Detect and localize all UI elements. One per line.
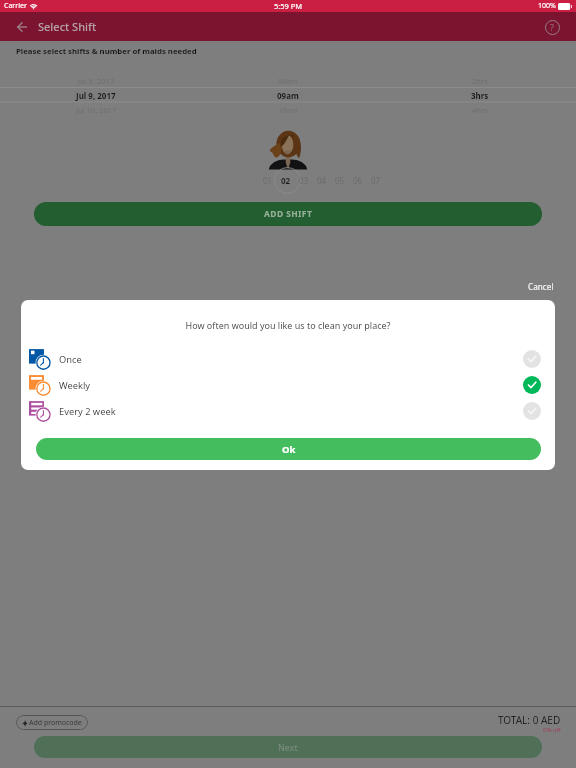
button[interactable]: 04 [313, 172, 331, 188]
staticText: 02 [281, 175, 291, 186]
button[interactable]: Help [540, 15, 564, 39]
staticText: 3hrs [471, 90, 489, 101]
staticText: 0% off [543, 726, 561, 734]
staticText: 07 [371, 175, 381, 186]
staticText: 2hrs [472, 76, 488, 86]
staticText: Once [59, 353, 82, 366]
staticText: 06 [353, 175, 363, 186]
button[interactable]: Weekly [21, 372, 555, 398]
button[interactable]: Ok [36, 438, 541, 460]
staticText: 04 [317, 175, 327, 186]
button[interactable]: ADD SHIFT [34, 202, 542, 226]
button[interactable]: 02 [277, 172, 295, 188]
button[interactable]: 01 [259, 172, 277, 188]
staticText: Jul 8, 2017 [78, 76, 114, 86]
button[interactable]: 07 [367, 172, 385, 188]
staticText: Please select shifts & number of maids n… [16, 46, 197, 57]
staticText: 100% [538, 1, 556, 11]
staticText: Carrier [4, 1, 27, 11]
staticText: TOTAL: 0 AED [498, 713, 561, 727]
button[interactable]: 05 [331, 172, 349, 188]
staticText: 08am [278, 76, 298, 86]
staticText: Add promocode [29, 718, 82, 728]
button[interactable]: Cancel [528, 281, 554, 292]
staticText: 4hrs [472, 105, 488, 115]
staticText: Ok [282, 443, 296, 456]
staticText: ADD SHIFT [264, 208, 313, 220]
staticText: 10am [278, 105, 298, 115]
button[interactable]: Next [34, 736, 542, 758]
button[interactable]: 03 [295, 172, 313, 188]
staticText: Next [278, 741, 298, 753]
staticText: 01 [263, 175, 273, 186]
button[interactable]: Back [10, 15, 34, 39]
staticText: Every 2 week [59, 405, 116, 418]
button[interactable]: Every 2 week [21, 398, 555, 424]
button[interactable]: Once [21, 346, 555, 372]
staticText: 09am [277, 90, 299, 101]
staticText: 5:59 PM [274, 1, 303, 11]
staticText: Jul 9, 2017 [76, 90, 116, 101]
staticText: 05 [335, 175, 345, 186]
staticText: How often would you like us to clean you… [21, 319, 555, 331]
staticText: 03 [299, 175, 309, 186]
staticText: ? [550, 21, 554, 33]
button[interactable]: Add promocode [22, 715, 82, 730]
staticText: Weekly [59, 379, 91, 392]
staticText: Select Shift [38, 19, 97, 34]
button[interactable]: 06 [349, 172, 367, 188]
staticText: Jul 10, 2017 [76, 105, 117, 115]
